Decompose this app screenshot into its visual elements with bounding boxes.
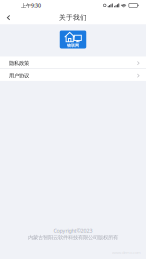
staticText: 关于我们 xyxy=(59,14,87,22)
button[interactable]: Back xyxy=(0,11,17,24)
staticText: 物联网 xyxy=(67,43,79,48)
button[interactable]: 隐私政策 xyxy=(0,56,146,68)
staticText: 隐私政策 xyxy=(9,60,29,66)
staticText: www.demo.com xyxy=(112,250,141,255)
staticText: 用户协议 xyxy=(9,72,29,79)
button[interactable]: 用户协议 xyxy=(0,69,146,81)
staticText: 内蒙古智阳云软件科技有限公司版权所有 xyxy=(28,234,118,241)
staticText: Copyright©2023 xyxy=(53,227,92,234)
staticText: 上午9:30 xyxy=(21,2,41,9)
